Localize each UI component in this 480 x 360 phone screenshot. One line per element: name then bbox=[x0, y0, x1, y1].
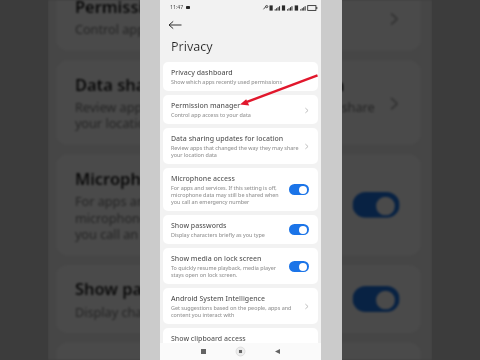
button[interactable]: Data sharing updates for location bbox=[163, 128, 318, 164]
button[interactable]: Open bbox=[300, 300, 312, 312]
staticText: Show passwords bbox=[171, 221, 227, 231]
button[interactable]: Microphone access bbox=[163, 168, 318, 211]
button[interactable]: Permission manager bbox=[56, 0, 421, 51]
staticText: you call an emergency number bbox=[171, 198, 250, 205]
staticText: Get suggestions based on the people, app… bbox=[171, 304, 292, 311]
staticText: For apps and services. If this setting i… bbox=[75, 192, 324, 208]
button[interactable]: Android System Intelligence bbox=[163, 288, 318, 324]
staticText: Show which apps recently used permission… bbox=[171, 78, 283, 85]
button[interactable]: Open bbox=[300, 140, 312, 152]
staticText: you call an emergency number bbox=[75, 225, 261, 241]
button[interactable]: Toggle bbox=[289, 224, 309, 235]
button[interactable]: Show passwords bbox=[56, 265, 421, 333]
staticText: Review apps that changed the way they ma… bbox=[75, 98, 376, 114]
staticText: your location data bbox=[171, 151, 217, 158]
staticText: Privacy dashboard bbox=[171, 68, 233, 78]
staticText: Display characters briefly as you type bbox=[75, 302, 296, 319]
button[interactable]: Back bbox=[168, 17, 184, 33]
staticText: Show clipboard access bbox=[171, 334, 246, 344]
button[interactable]: Back bbox=[271, 345, 284, 358]
button[interactable]: Show clipboard access bbox=[163, 328, 318, 350]
button[interactable]: Microphone access bbox=[56, 154, 421, 255]
staticText: Control app access to your data bbox=[75, 20, 263, 37]
button[interactable]: Toggle bbox=[289, 261, 309, 272]
button[interactable]: Data sharing updates for location bbox=[56, 60, 421, 145]
staticText: Show media on lock screen bbox=[75, 357, 294, 360]
staticText: Review apps that changed the way they ma… bbox=[171, 144, 299, 151]
button[interactable]: Show passwords bbox=[163, 215, 318, 244]
staticText: Show media on lock screen bbox=[171, 254, 262, 264]
button[interactable]: Toggle bbox=[289, 184, 309, 195]
staticText: stays open on lock screen. bbox=[171, 271, 238, 278]
button[interactable]: Toggle bbox=[352, 192, 400, 218]
staticText: Permission manager bbox=[171, 101, 241, 111]
button[interactable]: Show media on lock screen bbox=[56, 342, 421, 360]
button[interactable]: Permission manager bbox=[163, 95, 318, 124]
staticText: Microphone access bbox=[75, 168, 228, 192]
staticText: 11:47 bbox=[170, 4, 184, 11]
staticText: Android System Intelligence bbox=[171, 294, 265, 304]
staticText: Data sharing updates for location bbox=[171, 134, 284, 144]
staticText: microphone data may still be shared when bbox=[75, 208, 329, 225]
button[interactable]: Show media on lock screen bbox=[163, 248, 318, 284]
button[interactable]: Recent apps bbox=[197, 345, 210, 358]
staticText: Privacy bbox=[171, 38, 213, 55]
button[interactable]: Open bbox=[300, 104, 312, 116]
button[interactable]: Toggle bbox=[352, 286, 400, 312]
staticText: Show passwords bbox=[75, 279, 209, 302]
staticText: Control app access to your data bbox=[171, 111, 251, 118]
staticText: Data sharing updates for location bbox=[75, 74, 345, 98]
staticText: Permission manager bbox=[75, 0, 242, 20]
staticText: content you interact with bbox=[171, 311, 235, 318]
staticText: For apps and services. If this setting i… bbox=[171, 184, 277, 191]
staticText: Display characters briefly as you type bbox=[171, 231, 265, 238]
staticText: Microphone access bbox=[171, 174, 235, 184]
button[interactable]: Privacy dashboard bbox=[163, 62, 318, 91]
staticText: To quickly resume playback, media player bbox=[171, 264, 276, 271]
button[interactable]: Home bbox=[234, 345, 247, 358]
staticText: microphone data may still be shared when bbox=[171, 191, 279, 198]
staticText: your location data bbox=[75, 114, 183, 131]
